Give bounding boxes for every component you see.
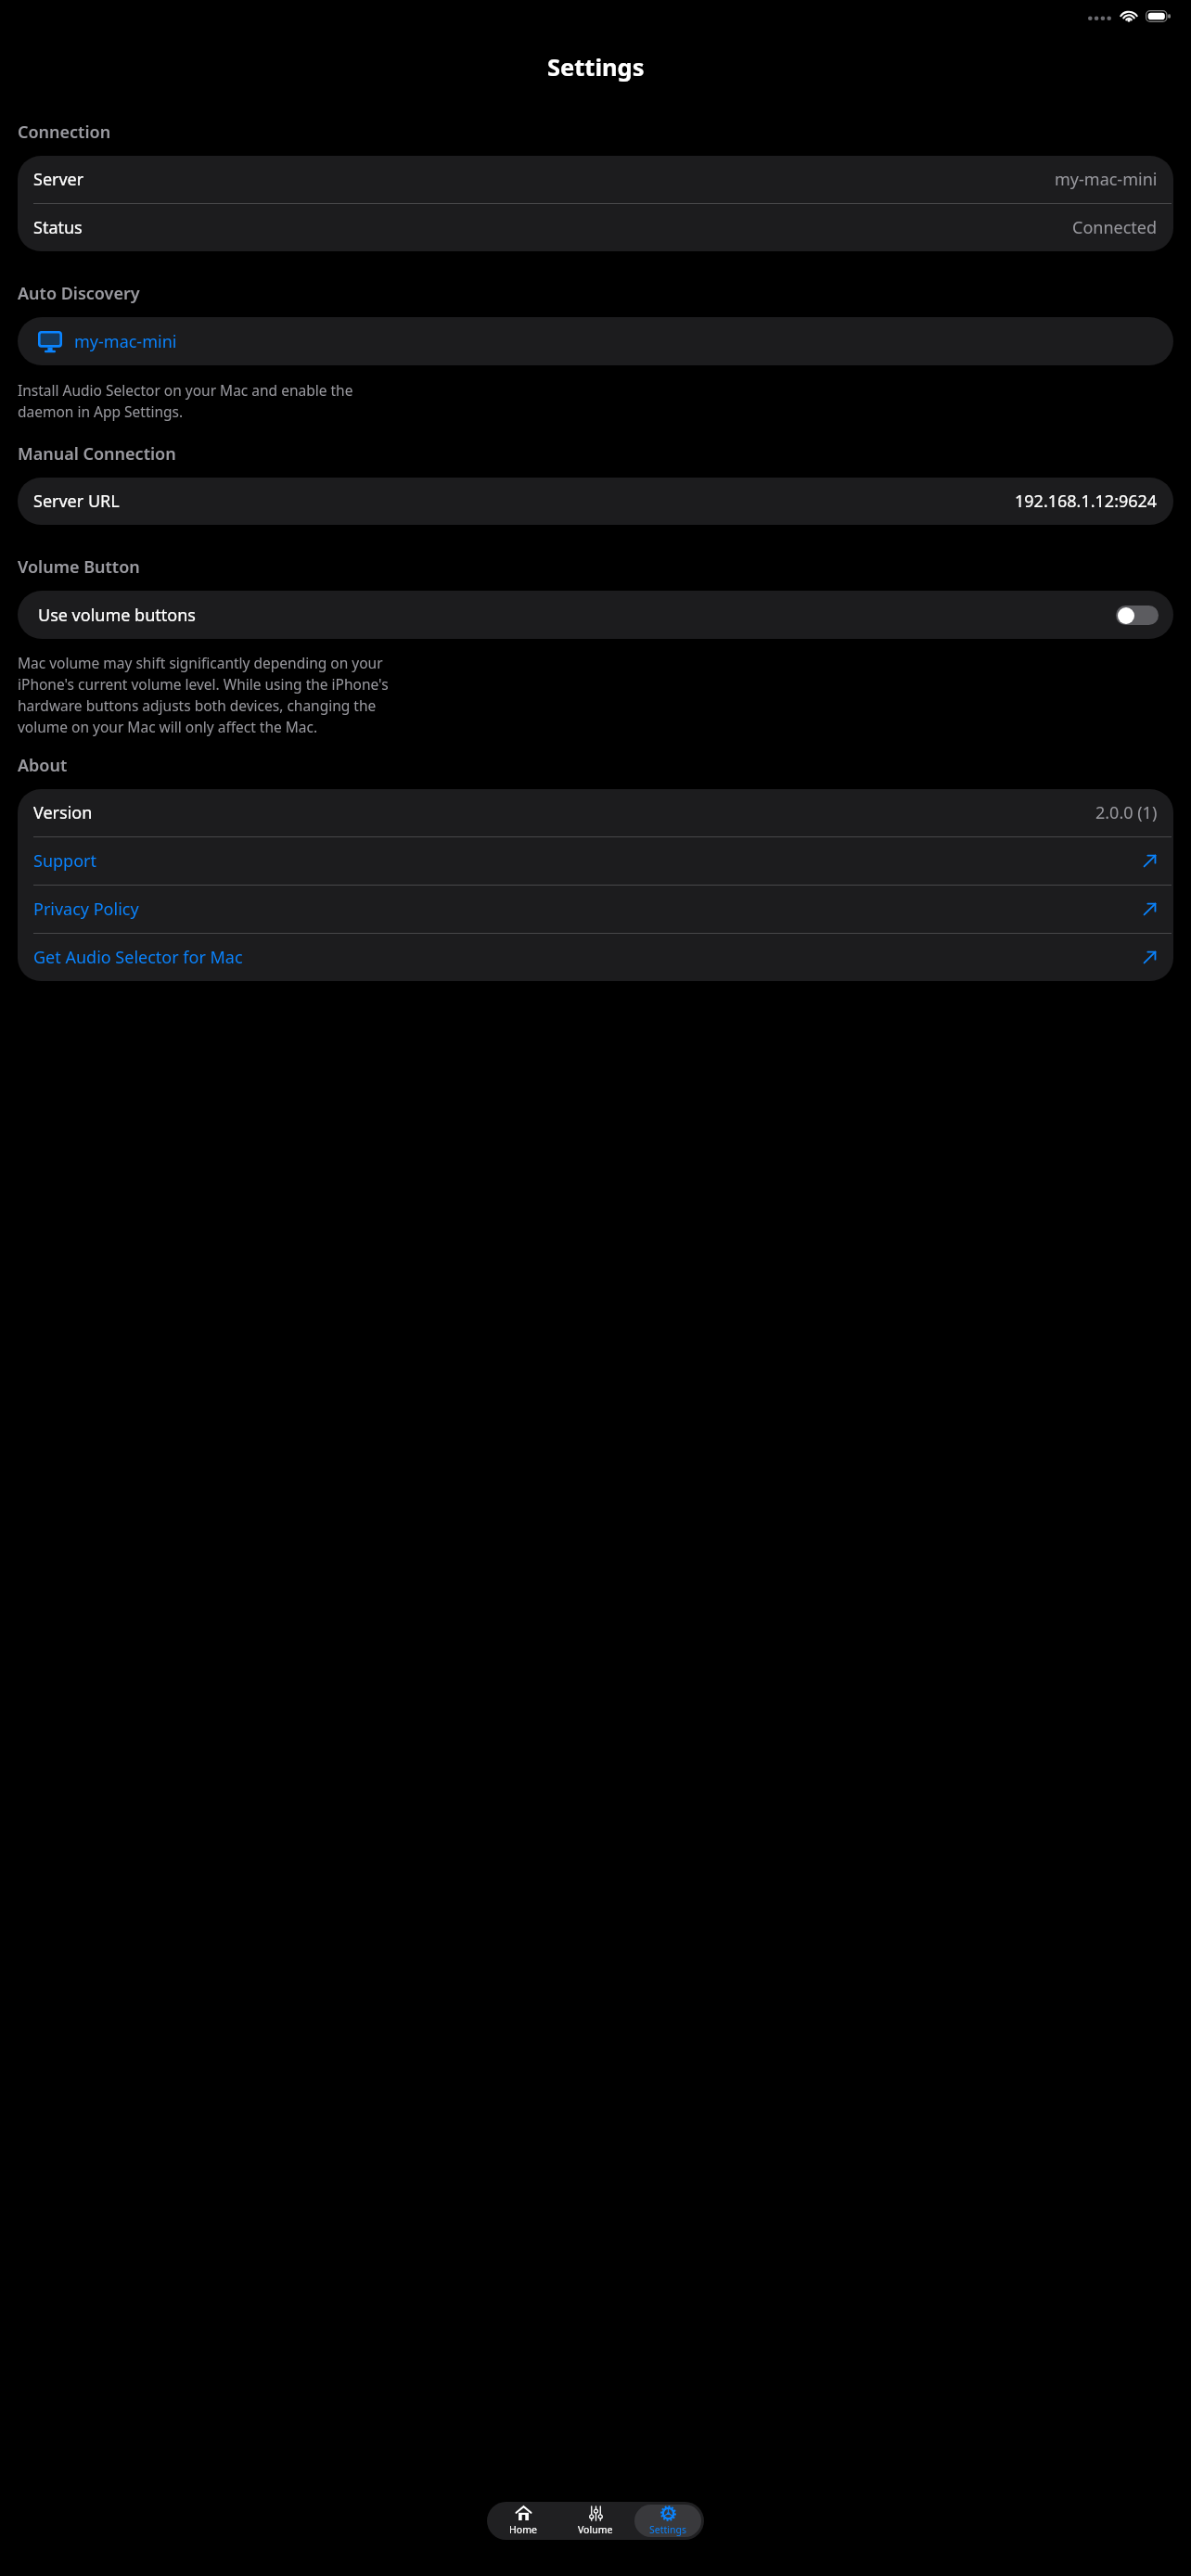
staticText: Use volume buttons [38, 604, 196, 627]
staticText: Support [33, 849, 96, 873]
other: Use volume buttons [1116, 606, 1159, 625]
staticText: 2.0.0 (1) [1095, 801, 1158, 824]
staticText: Get Audio Selector for Mac [33, 946, 243, 969]
staticText: Manual Connection [18, 442, 176, 465]
staticText: Volume [578, 2523, 613, 2536]
staticText: Privacy Policy [33, 898, 139, 921]
staticText: Settings [649, 2523, 686, 2536]
staticText: Volume Button [18, 555, 140, 579]
button[interactable]: Get Audio Selector for Mac [18, 934, 1173, 981]
staticText: Auto Discovery [18, 282, 140, 305]
staticText: Home [509, 2523, 537, 2536]
button[interactable]: my-mac-mini [18, 317, 1173, 365]
button[interactable]: Version [18, 789, 1173, 836]
button[interactable]: Server URL [18, 478, 1173, 525]
staticText: Mac volume may shift significantly depen… [18, 653, 389, 737]
staticText: my-mac-mini [1055, 168, 1158, 191]
button[interactable]: Home [490, 2505, 557, 2537]
button[interactable]: Privacy Policy [18, 886, 1173, 933]
button[interactable]: Server [18, 156, 1173, 203]
staticText: Connection [18, 121, 111, 144]
staticText: Settings [547, 51, 645, 83]
button[interactable]: Volume [562, 2505, 629, 2537]
staticText: Install Audio Selector on your Mac and e… [18, 380, 353, 422]
button[interactable]: Use volume buttons [18, 591, 1173, 639]
staticText: Version [33, 801, 93, 824]
button[interactable]: Support [18, 837, 1173, 885]
staticText: 192.168.1.12:9624 [1015, 490, 1158, 513]
staticText: Status [33, 216, 83, 239]
staticText: Server [33, 168, 84, 191]
button[interactable]: Status [18, 204, 1173, 251]
staticText: my-mac-mini [74, 330, 177, 353]
staticText: Server URL [33, 490, 120, 513]
button[interactable]: Settings [634, 2505, 701, 2537]
staticText: About [18, 754, 68, 777]
staticText: Connected [1072, 216, 1158, 239]
